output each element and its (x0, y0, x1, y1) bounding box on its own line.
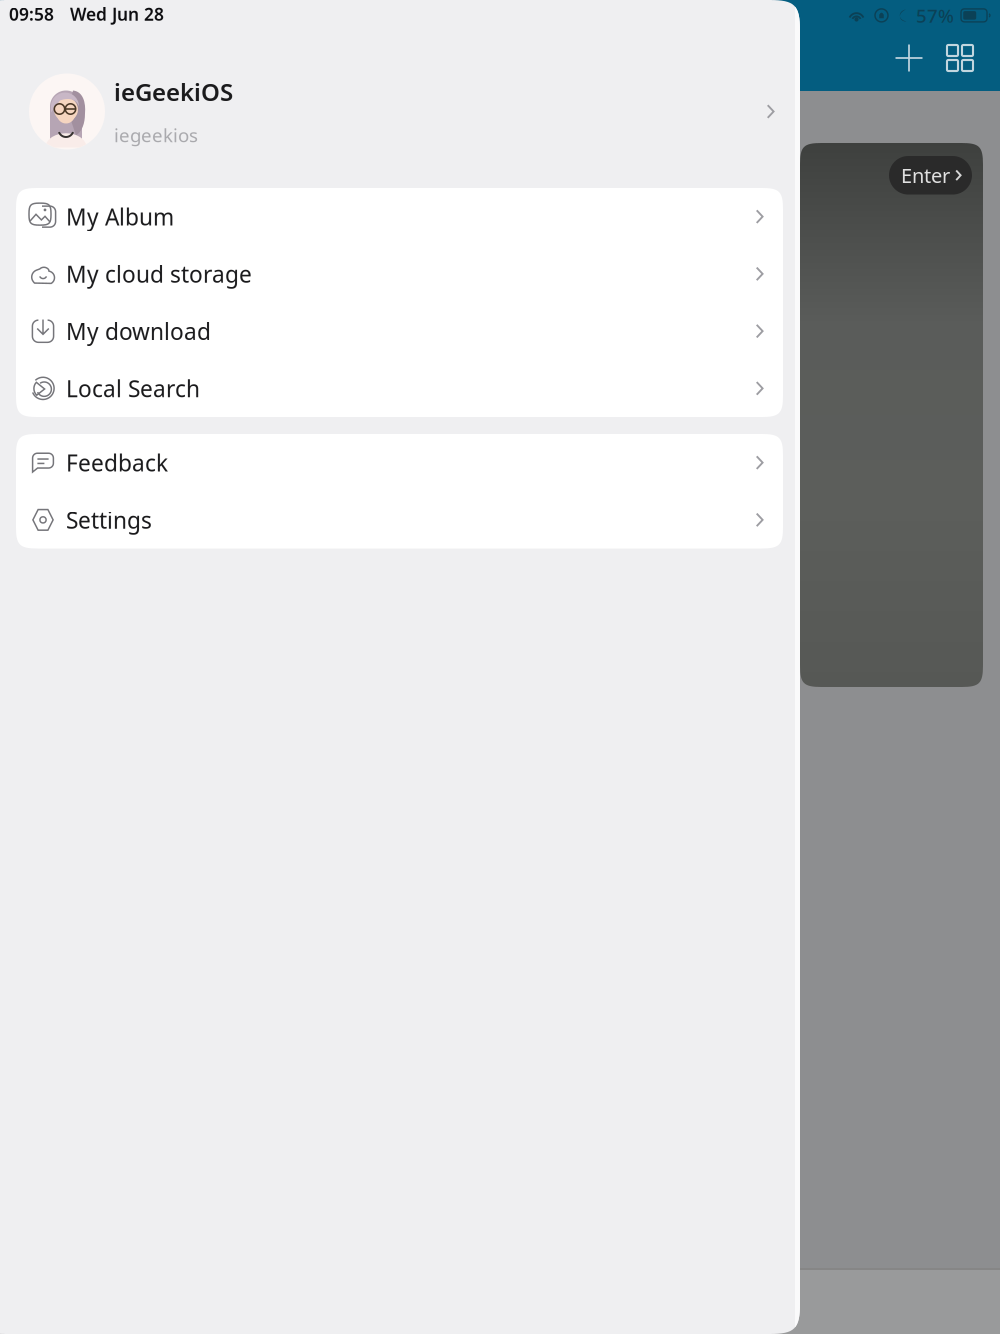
staticText: Feedback (66, 448, 168, 478)
button[interactable]: My Album (16, 188, 783, 245)
staticText: My cloud storage (66, 259, 252, 289)
staticText: 57% (916, 3, 954, 28)
button[interactable]: Feedback (16, 434, 783, 491)
staticText: 09:58 (9, 2, 54, 25)
staticText: Settings (66, 505, 152, 535)
button[interactable]: My cloud storage (16, 245, 783, 302)
button[interactable]: My download (16, 302, 783, 360)
button[interactable]: Enter (889, 156, 972, 195)
staticText: ieGeekiOS (114, 76, 233, 108)
staticText: My Album (66, 202, 174, 232)
staticText: iegeekios (114, 122, 198, 147)
staticText: My download (66, 316, 211, 346)
button[interactable]: Add (895, 44, 923, 72)
button[interactable]: Local Search (16, 360, 783, 417)
staticText: Local Search (66, 373, 200, 403)
staticText: Enter (901, 162, 950, 189)
button[interactable]: Settings (16, 491, 783, 548)
button[interactable]: ieGeekiOS (0, 55, 800, 168)
button[interactable]: Grid view (947, 45, 973, 71)
staticText: Wed Jun 28 (70, 2, 164, 25)
